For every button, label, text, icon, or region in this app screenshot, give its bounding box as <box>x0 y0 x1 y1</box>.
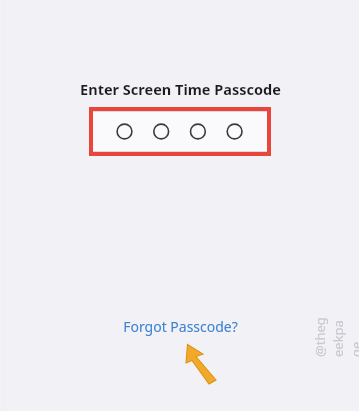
staticText: @thegeekpage <box>311 317 359 357</box>
other: Pointer <box>183 341 223 385</box>
staticText: Enter Screen Time Passcode <box>80 79 281 98</box>
button[interactable]: Passcode entry field <box>93 111 267 152</box>
button[interactable]: Forgot Passcode? <box>110 315 250 338</box>
staticText: Forgot Passcode? <box>123 317 238 336</box>
